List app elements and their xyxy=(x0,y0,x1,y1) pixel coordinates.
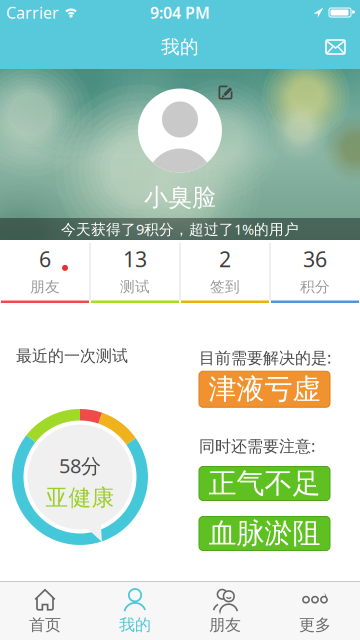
staticText: 13 xyxy=(123,245,147,273)
staticText: 我的 xyxy=(161,35,199,58)
staticText: 测试 xyxy=(120,278,150,296)
staticText: 首页 xyxy=(29,615,61,635)
button[interactable]: 更多 xyxy=(270,582,360,640)
button[interactable]: 36 xyxy=(270,240,360,303)
staticText: Carrier xyxy=(6,2,59,23)
button[interactable]: 2 xyxy=(180,240,270,303)
staticText: 我的 xyxy=(119,615,151,635)
staticText: 目前需要解决的是: xyxy=(199,347,331,368)
button[interactable]: 6 xyxy=(0,240,90,303)
button[interactable]: Messages xyxy=(316,30,355,64)
staticText: 朋友 xyxy=(209,615,241,635)
staticText: 9:04 PM xyxy=(150,2,210,23)
staticText: 今天获得了9积分，超过了1%的用户 xyxy=(61,219,299,239)
staticText: 58分 xyxy=(59,452,101,479)
button[interactable]: 朋友 xyxy=(180,582,270,640)
button[interactable]: 我的 xyxy=(90,582,180,640)
button[interactable]: 津液亏虚 xyxy=(199,371,330,407)
staticText: 积分 xyxy=(300,278,330,296)
button[interactable]: 血脉淤阻 xyxy=(199,516,330,550)
staticText: 小臭脸 xyxy=(144,183,216,212)
staticText: 亚健康 xyxy=(45,484,114,512)
staticText: 津液亏虚 xyxy=(208,372,320,406)
staticText: 血脉淤阻 xyxy=(208,516,320,551)
button[interactable]: Edit profile xyxy=(212,79,240,106)
button[interactable]: 首页 xyxy=(0,582,90,640)
button[interactable]: Profile photo xyxy=(138,88,222,172)
staticText: 同时还需要注意: xyxy=(199,435,315,456)
staticText: 6 xyxy=(39,245,51,273)
staticText: 签到 xyxy=(210,278,240,296)
staticText: 更多 xyxy=(299,615,331,635)
button[interactable]: 正气不足 xyxy=(199,466,330,500)
staticText: 36 xyxy=(303,245,327,273)
button[interactable]: 13 xyxy=(90,240,180,303)
staticText: 正气不足 xyxy=(208,466,320,501)
staticText: 2 xyxy=(219,245,231,273)
staticText: 朋友 xyxy=(30,278,60,296)
staticText: 最近的一次测试 xyxy=(16,346,128,366)
